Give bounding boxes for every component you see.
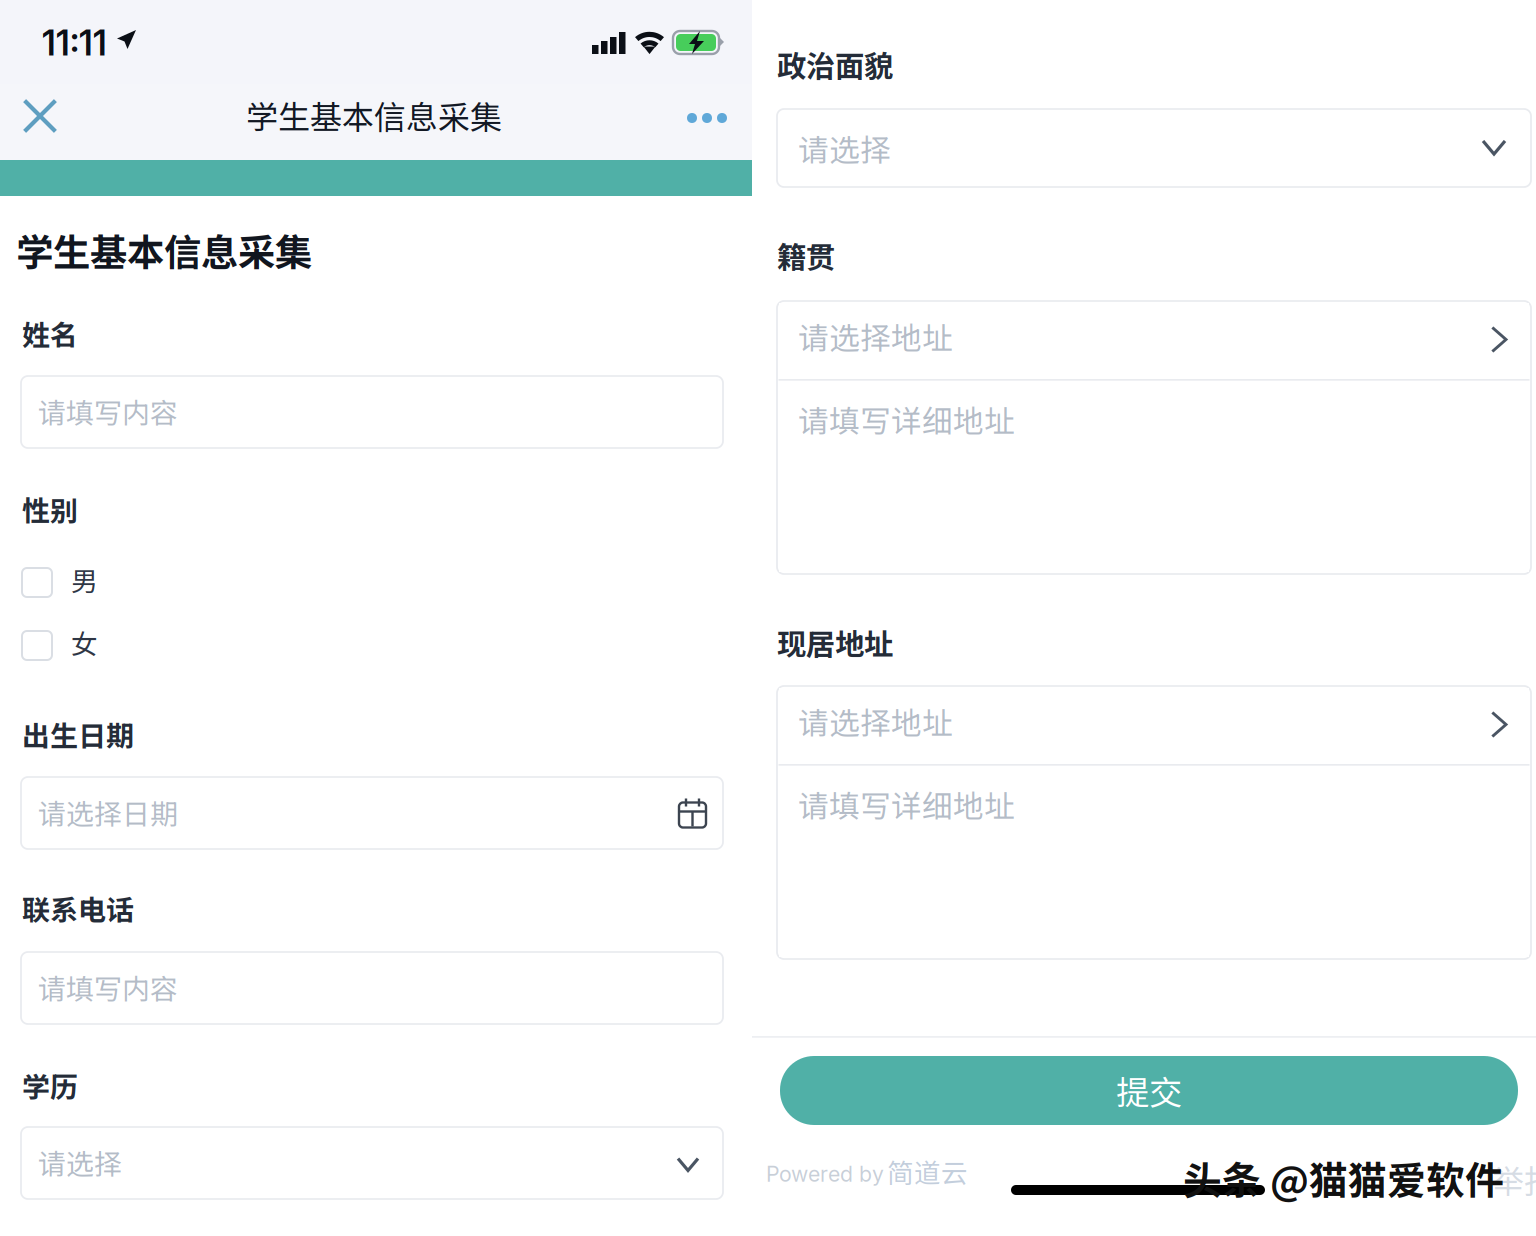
staticText: 请填写内容	[38, 391, 178, 431]
button[interactable]: 请选择	[21, 1127, 723, 1199]
staticText: 姓名	[22, 313, 78, 353]
staticText: 举报	[1492, 1156, 1536, 1202]
staticText: 出生日期	[22, 714, 134, 754]
staticText: Powered by	[766, 1161, 884, 1187]
staticText: 请填写详细地址	[798, 782, 1015, 826]
staticText: 简道云	[887, 1152, 968, 1191]
button[interactable]: 请填写内容	[21, 376, 723, 448]
staticText: 请填写详细地址	[798, 397, 1015, 441]
staticText: 政治面貌	[777, 43, 893, 85]
staticText: 请选择地址	[798, 699, 953, 743]
staticText: 性别	[22, 489, 78, 529]
staticText: 女	[71, 623, 98, 662]
button[interactable]: 男	[21, 567, 261, 612]
button[interactable]: 请选择	[777, 109, 1531, 187]
staticText: 11:11	[42, 22, 107, 64]
button[interactable]: 请填写详细地址	[779, 381, 1529, 572]
staticText: 请选择日期	[38, 792, 178, 832]
button[interactable]: 请选择地址	[777, 686, 1531, 763]
staticText: 学生基本信息采集	[246, 92, 502, 138]
staticText: 现居地址	[777, 621, 893, 663]
staticText: 联系电话	[22, 888, 134, 928]
button[interactable]: 请填写内容	[21, 952, 723, 1024]
staticText: 提交	[1116, 1066, 1182, 1115]
button[interactable]: 请填写详细地址	[779, 766, 1529, 957]
staticText: 学生基本信息采集	[16, 223, 312, 277]
staticText: 请填写内容	[38, 967, 178, 1007]
staticText: 学历	[22, 1065, 78, 1105]
staticText: 头条 @猫猫爱软件	[1183, 1150, 1504, 1206]
button[interactable]: 请选择日期	[21, 777, 723, 849]
staticText: 籍贯	[777, 234, 835, 276]
button[interactable]: 提交	[780, 1056, 1518, 1125]
staticText: 请选择	[38, 1142, 122, 1182]
button[interactable]: 请选择地址	[777, 301, 1531, 378]
button[interactable]: 女	[21, 630, 261, 675]
button[interactable]: Close	[4, 78, 76, 154]
staticText: 男	[71, 560, 98, 599]
staticText: 请选择地址	[798, 314, 953, 358]
button[interactable]: More options	[662, 80, 752, 156]
staticText: 请选择	[798, 126, 891, 170]
